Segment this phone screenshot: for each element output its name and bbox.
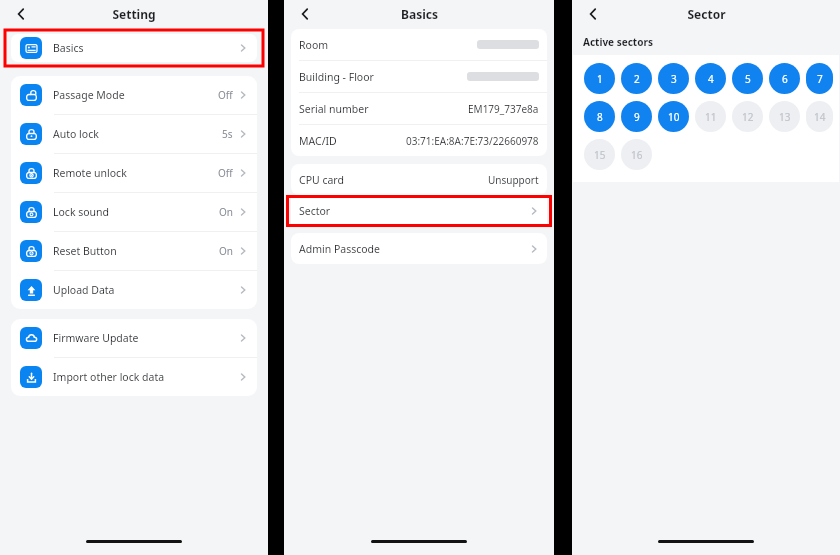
staticText: Sector: [299, 204, 331, 218]
button[interactable]: 7: [806, 63, 833, 94]
button[interactable]: Remote unlock: [11, 154, 257, 192]
button[interactable]: Admin Passcode: [291, 233, 547, 264]
button[interactable]: Upload Data: [11, 271, 257, 309]
staticText: Active sectors: [583, 35, 653, 49]
staticText: 10: [668, 110, 680, 124]
button[interactable]: 2: [621, 63, 652, 94]
staticText: Lock sound: [53, 205, 110, 219]
button[interactable]: Import other lock data: [11, 358, 257, 396]
staticText: Basics: [53, 41, 84, 55]
staticText: 3: [671, 72, 677, 86]
staticText: Remote unlock: [53, 166, 127, 180]
button[interactable]: Basics: [11, 34, 257, 62]
button[interactable]: MAC/ID: [291, 125, 547, 156]
staticText: 16: [631, 148, 643, 162]
staticText: Reset Button: [53, 244, 117, 258]
staticText: MAC/ID: [299, 134, 337, 148]
button[interactable]: 3: [658, 63, 689, 94]
staticText: On: [219, 244, 233, 258]
staticText: Auto lock: [53, 127, 99, 141]
staticText: 7: [817, 72, 823, 86]
staticText: Off: [218, 88, 233, 102]
staticText: Upload Data: [53, 283, 115, 297]
staticText: 9: [634, 110, 640, 124]
button[interactable]: Room: [291, 29, 547, 60]
staticText: Passage Mode: [53, 88, 125, 102]
staticText: 03:71:EA:8A:7E:73/22660978: [406, 134, 539, 148]
staticText: Admin Passcode: [299, 242, 380, 256]
button[interactable]: 4: [695, 63, 726, 94]
button[interactable]: 1: [584, 63, 615, 94]
button[interactable]: 9: [621, 101, 652, 132]
button[interactable]: 15: [584, 139, 615, 170]
staticText: EM179_737e8a: [468, 102, 539, 116]
button[interactable]: Back: [580, 1, 606, 27]
button[interactable]: 11: [695, 101, 726, 132]
staticText: 12: [742, 110, 754, 124]
staticText: 14: [814, 110, 826, 124]
button[interactable]: 12: [732, 101, 763, 132]
staticText: Sector: [687, 6, 726, 22]
staticText: Room: [299, 38, 329, 52]
staticText: Setting: [112, 6, 156, 22]
button[interactable]: Lock sound: [11, 193, 257, 231]
staticText: Basics: [401, 6, 438, 22]
button[interactable]: 5: [732, 63, 763, 94]
button[interactable]: 8: [584, 101, 615, 132]
staticText: 5s: [222, 127, 233, 141]
button[interactable]: Serial number: [291, 93, 547, 124]
button[interactable]: Auto lock: [11, 115, 257, 153]
staticText: On: [219, 205, 233, 219]
staticText: 4: [708, 72, 714, 86]
staticText: Import other lock data: [53, 370, 165, 384]
button[interactable]: 16: [621, 139, 652, 170]
button[interactable]: 10: [658, 101, 689, 132]
staticText: Unsupport: [488, 173, 539, 187]
staticText: Serial number: [299, 102, 369, 116]
button[interactable]: 6: [769, 63, 800, 94]
button[interactable]: Sector: [291, 198, 547, 224]
staticText: 6: [782, 72, 788, 86]
button[interactable]: Back: [292, 1, 318, 27]
staticText: 11: [705, 110, 717, 124]
button[interactable]: 13: [769, 101, 800, 132]
staticText: CPU card: [299, 173, 344, 187]
staticText: 1: [597, 72, 603, 86]
button[interactable]: Reset Button: [11, 232, 257, 270]
button[interactable]: Building - Floor: [291, 61, 547, 92]
staticText: Firmware Update: [53, 331, 139, 345]
button[interactable]: Passage Mode: [11, 76, 257, 114]
staticText: 5: [745, 72, 751, 86]
staticText: 8: [597, 110, 603, 124]
staticText: 15: [594, 148, 606, 162]
button[interactable]: Back: [8, 1, 34, 27]
staticText: 2: [634, 72, 640, 86]
staticText: 13: [779, 110, 791, 124]
button[interactable]: 14: [806, 101, 833, 132]
staticText: Off: [218, 166, 233, 180]
button[interactable]: Firmware Update: [11, 319, 257, 357]
button[interactable]: CPU card: [291, 164, 547, 195]
staticText: Building - Floor: [299, 70, 374, 84]
